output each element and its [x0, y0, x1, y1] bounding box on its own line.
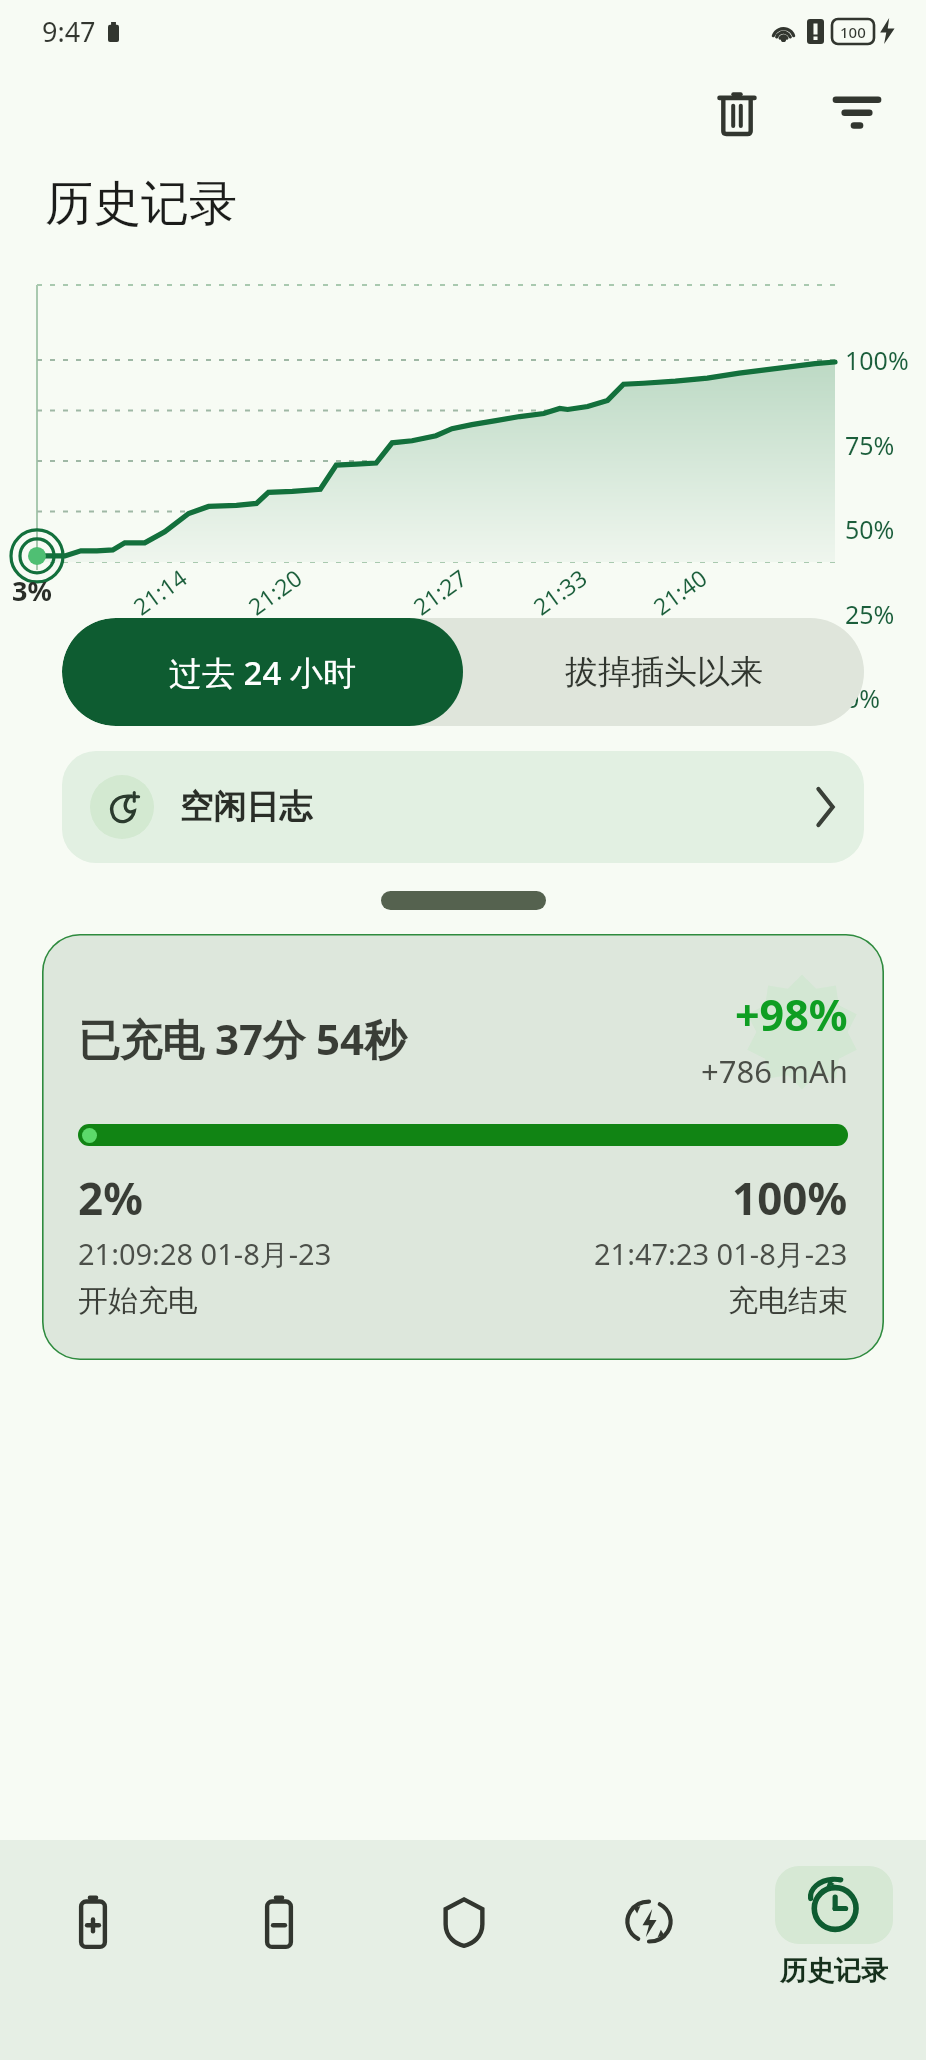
staticText: 75%	[845, 428, 895, 462]
staticText: 21:27	[406, 562, 472, 621]
button[interactable]: Charge cycles	[556, 1866, 741, 2006]
staticText: 历史记录	[45, 174, 237, 234]
staticText: 100%	[845, 343, 909, 377]
staticText: 9:47	[42, 13, 96, 50]
button[interactable]: Battery discharge	[186, 1866, 371, 2006]
button[interactable]: Battery charge	[0, 1866, 186, 2006]
button[interactable]: 过去 24 小时	[62, 618, 463, 726]
staticText: 50%	[845, 512, 895, 546]
staticText: 100	[840, 22, 866, 42]
button[interactable]: 历史记录	[741, 1866, 926, 2036]
staticText: 已充电 37分 54秒	[78, 1010, 406, 1067]
staticText: +98%	[735, 985, 848, 1044]
staticText: 21:20	[241, 562, 307, 621]
staticText: 100%	[732, 1168, 848, 1228]
staticText: 25%	[845, 597, 895, 631]
staticText: 21:09:28 01-8月-23	[78, 1234, 332, 1274]
staticText: 过去 24 小时	[169, 650, 356, 695]
staticText: 拔掉插头以来	[565, 651, 763, 693]
button[interactable]: 拔掉插头以来	[463, 618, 864, 726]
staticText: 空闲日志	[180, 786, 312, 828]
staticText: 21:33	[526, 562, 592, 621]
staticText: 3%	[12, 572, 52, 609]
button[interactable]: Delete	[694, 69, 780, 155]
staticText: 历史记录	[780, 1954, 888, 1988]
staticText: 充电结束	[728, 1282, 848, 1320]
staticText: +786 mAh	[701, 1050, 848, 1092]
button[interactable]: Battery health	[371, 1866, 556, 2006]
button[interactable]: 空闲日志	[62, 751, 864, 863]
button[interactable]: 已充电 37分 54秒	[42, 934, 884, 1360]
staticText: 0%	[845, 681, 881, 715]
staticText: 21:47:23 01-8月-23	[594, 1234, 848, 1274]
staticText: 21:14	[126, 562, 192, 621]
staticText: 开始充电	[78, 1282, 198, 1320]
staticText: 2%	[78, 1168, 143, 1228]
staticText: 21:40	[646, 562, 712, 621]
button[interactable]: Filter	[814, 69, 900, 155]
